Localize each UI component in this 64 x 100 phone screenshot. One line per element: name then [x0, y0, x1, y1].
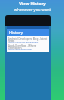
staticText: Stack Overflow - Where Developers — [8, 44, 50, 50]
button[interactable]: History — [7, 29, 49, 36]
staticText: View History — [19, 1, 46, 7]
staticText: https://android-developers. — [8, 40, 39, 43]
staticText: https://stackoverflow. — [8, 47, 33, 50]
staticText: History — [9, 30, 23, 35]
staticText: whenever you want — [14, 7, 51, 12]
staticText: Android Developers Blog - latest news — [8, 37, 50, 43]
